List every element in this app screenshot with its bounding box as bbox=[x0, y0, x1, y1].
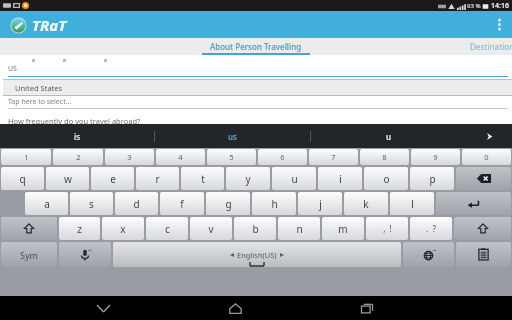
button[interactable]: Voice input bbox=[59, 242, 111, 267]
staticText: 9 bbox=[433, 152, 438, 162]
other: Shift bbox=[24, 223, 34, 234]
staticText: y bbox=[245, 172, 251, 186]
button[interactable]: 6 bbox=[258, 149, 307, 165]
button[interactable]: y bbox=[226, 167, 270, 190]
staticText: , ! bbox=[383, 223, 392, 234]
button[interactable]: l bbox=[390, 192, 434, 215]
button[interactable]: . ? bbox=[410, 217, 452, 240]
button[interactable]: Shift bbox=[454, 217, 511, 240]
button[interactable]: z bbox=[59, 217, 100, 240]
staticText: 8 bbox=[382, 152, 387, 162]
staticText: s bbox=[89, 197, 94, 211]
button[interactable]: , ! bbox=[366, 217, 408, 240]
button[interactable]: Backspace bbox=[456, 167, 511, 190]
staticText: d bbox=[133, 197, 140, 211]
button[interactable]: More options bbox=[486, 11, 512, 38]
button[interactable]: c bbox=[146, 217, 188, 240]
button[interactable]: us bbox=[155, 124, 310, 148]
button[interactable]: j bbox=[298, 192, 342, 215]
staticText: n bbox=[296, 222, 303, 236]
button[interactable]: Destination bbox=[456, 38, 512, 55]
button[interactable]: Hide keyboard bbox=[73, 296, 133, 320]
button[interactable]: s bbox=[70, 192, 113, 215]
button[interactable]: n bbox=[278, 217, 320, 240]
button[interactable]: k bbox=[344, 192, 388, 215]
other: Change input language bbox=[422, 248, 436, 262]
button[interactable]: r bbox=[136, 167, 179, 190]
staticText: 6 bbox=[280, 152, 285, 162]
button[interactable]: English(US) bbox=[113, 242, 401, 267]
staticText: l bbox=[411, 197, 414, 211]
button[interactable]: p bbox=[410, 167, 454, 190]
button[interactable]: About Person Travelling bbox=[202, 38, 310, 55]
button[interactable]: e bbox=[91, 167, 134, 190]
button[interactable]: Enter bbox=[436, 192, 511, 215]
button[interactable]: v bbox=[190, 217, 232, 240]
button[interactable]: u bbox=[272, 167, 316, 190]
staticText: p bbox=[429, 172, 436, 186]
staticText: a bbox=[44, 197, 50, 211]
staticText: u bbox=[386, 131, 392, 142]
button[interactable]: o bbox=[364, 167, 408, 190]
staticText: About Person Travelling bbox=[210, 41, 302, 52]
button[interactable]: 2 bbox=[53, 149, 103, 165]
staticText: 93 % bbox=[467, 2, 481, 10]
staticText: 0 bbox=[484, 152, 489, 162]
button[interactable]: 3 bbox=[105, 149, 154, 165]
staticText: v bbox=[208, 222, 214, 236]
staticText: United States bbox=[15, 83, 63, 93]
button[interactable]: f bbox=[160, 192, 204, 215]
button[interactable]: i bbox=[318, 167, 362, 190]
staticText: US bbox=[8, 64, 17, 74]
button[interactable]: Sym bbox=[1, 242, 57, 267]
other: Shift bbox=[478, 223, 488, 234]
button[interactable]: h bbox=[252, 192, 296, 215]
staticText: h bbox=[271, 197, 278, 211]
button[interactable]: Shift bbox=[1, 217, 57, 240]
button[interactable]: 5 bbox=[207, 149, 256, 165]
button[interactable]: 4 bbox=[156, 149, 205, 165]
button[interactable]: Recent apps bbox=[337, 296, 397, 320]
button[interactable]: United States bbox=[3, 79, 512, 96]
staticText: 2 bbox=[76, 152, 81, 162]
staticText: u bbox=[291, 172, 298, 186]
button[interactable]: 0 bbox=[462, 149, 511, 165]
button[interactable]: Home bbox=[205, 296, 265, 320]
button[interactable]: 7 bbox=[309, 149, 358, 165]
staticText: z bbox=[77, 222, 82, 236]
staticText: m bbox=[338, 222, 348, 236]
button[interactable]: More suggestions bbox=[466, 124, 512, 148]
staticText: t bbox=[201, 172, 205, 186]
button[interactable]: x bbox=[102, 217, 144, 240]
button[interactable]: 9 bbox=[411, 149, 460, 165]
staticText: Sym bbox=[20, 249, 38, 261]
staticText: i bbox=[339, 172, 342, 186]
staticText: 14:16 bbox=[491, 1, 509, 11]
button[interactable]: is bbox=[0, 124, 154, 148]
button[interactable]: d bbox=[115, 192, 158, 215]
button[interactable]: t bbox=[181, 167, 224, 190]
staticText: b bbox=[252, 222, 259, 236]
staticText: 1 bbox=[24, 152, 29, 162]
button[interactable]: 1 bbox=[1, 149, 51, 165]
button[interactable]: Change input language bbox=[403, 242, 454, 267]
staticText: English(US) bbox=[237, 250, 277, 260]
staticText: g bbox=[225, 197, 232, 211]
staticText: e bbox=[110, 172, 116, 186]
button[interactable]: a bbox=[25, 192, 68, 215]
button[interactable]: m bbox=[322, 217, 364, 240]
button[interactable]: u bbox=[311, 124, 466, 148]
staticText: q bbox=[19, 172, 26, 186]
staticText: x bbox=[120, 222, 126, 236]
button[interactable]: q bbox=[1, 167, 44, 190]
other: Enter bbox=[467, 199, 480, 209]
other: Clipboard bbox=[478, 248, 489, 261]
staticText: . ? bbox=[426, 223, 436, 234]
button[interactable]: b bbox=[234, 217, 276, 240]
button[interactable]: w bbox=[46, 167, 89, 190]
staticText: w bbox=[64, 172, 72, 186]
staticText: Tap here to select... bbox=[8, 97, 72, 107]
button[interactable]: g bbox=[206, 192, 250, 215]
button[interactable]: 8 bbox=[360, 149, 409, 165]
button[interactable]: Clipboard bbox=[456, 242, 511, 267]
